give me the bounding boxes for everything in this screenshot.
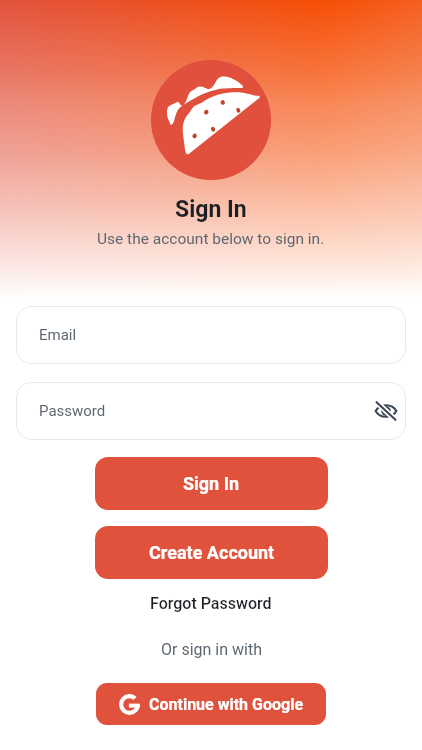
button[interactable]: Password — [16, 382, 406, 440]
button[interactable]: Continue with Google — [96, 683, 326, 725]
staticText: Forgot Password — [150, 594, 272, 613]
button[interactable]: Email — [16, 306, 406, 364]
button[interactable]: Sign In — [95, 457, 328, 510]
button[interactable]: Create Account — [95, 526, 328, 579]
button[interactable]: Show password — [375, 400, 397, 422]
staticText: Sign In — [175, 196, 247, 223]
staticText: Create Account — [149, 542, 275, 563]
staticText: Password — [39, 402, 106, 420]
button[interactable]: Forgot Password — [140, 589, 282, 618]
staticText: Use the account below to sign in. — [97, 230, 325, 248]
staticText: Sign In — [183, 473, 240, 494]
staticText: Or sign in with — [161, 640, 262, 659]
staticText: Continue with Google — [149, 695, 304, 714]
staticText: Email — [39, 326, 77, 344]
